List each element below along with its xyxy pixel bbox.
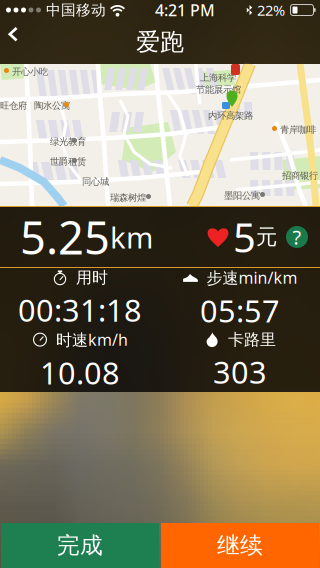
button[interactable]: Back — [6, 26, 38, 58]
staticText: 上海科学 — [200, 72, 236, 83]
staticText: 元 — [256, 224, 277, 250]
staticText: 瑞森树煌 — [110, 192, 146, 203]
button[interactable]: 完成 — [1, 523, 159, 568]
staticText: 节能展示馆 — [196, 84, 241, 95]
staticText: 用时 — [76, 268, 108, 287]
staticText: 完成 — [57, 532, 103, 559]
staticText: 22% — [257, 0, 285, 20]
staticText: km — [110, 217, 153, 256]
staticText: 爱跑 — [136, 27, 184, 57]
staticText: ? — [292, 224, 301, 250]
staticText: 世爵租赁 — [50, 156, 86, 167]
staticText: 青岸咖啡 — [280, 124, 316, 135]
button[interactable]: Help — [286, 226, 308, 248]
staticText: 5 — [233, 210, 256, 263]
staticText: 陶水公寓 — [34, 100, 70, 111]
staticText: 时速km/h — [56, 329, 128, 350]
button[interactable]: 继续 — [161, 523, 319, 568]
staticText: 招商银行 — [282, 170, 318, 181]
staticText: 中国移动 — [46, 1, 106, 19]
staticText: 墨阳公寓 — [224, 190, 260, 201]
staticText: 4:21 PM — [155, 0, 215, 21]
staticText: 开心小吃 — [12, 66, 48, 77]
staticText: 5.25 — [20, 207, 110, 267]
staticText: 旺仓府 — [0, 100, 27, 111]
staticText: 00:31:18 — [18, 289, 142, 330]
staticText: 10.08 — [40, 352, 120, 393]
staticText: 05:57 — [200, 290, 280, 331]
staticText: 303 — [213, 351, 267, 392]
staticText: 绿光教育 — [50, 136, 86, 147]
staticText: 内环高架路 — [208, 110, 253, 121]
staticText: 卡路里 — [228, 330, 276, 349]
staticText: 同心城 — [82, 176, 109, 187]
staticText: 继续 — [217, 532, 263, 559]
staticText: 步速min/km — [206, 267, 297, 288]
